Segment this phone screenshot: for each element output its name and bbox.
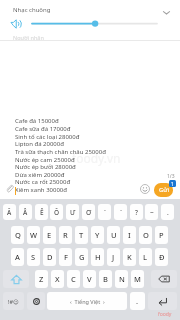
button[interactable]: I bbox=[123, 226, 136, 244]
staticText: . bbox=[167, 208, 169, 217]
button[interactable]: W bbox=[27, 226, 40, 244]
button[interactable]: P bbox=[155, 226, 168, 244]
button[interactable]: A bbox=[11, 248, 24, 266]
staticText: ? bbox=[135, 208, 138, 217]
button[interactable]: ` bbox=[114, 204, 127, 220]
button[interactable]: Ê bbox=[35, 204, 48, 220]
button[interactable]: S bbox=[27, 248, 40, 266]
staticText: 1/3 bbox=[167, 173, 175, 180]
staticText: U bbox=[111, 230, 117, 240]
button[interactable]: Emoji bbox=[138, 182, 152, 196]
staticText: Z bbox=[39, 274, 44, 284]
button[interactable]: ~ bbox=[145, 204, 158, 220]
button[interactable]: M bbox=[131, 270, 144, 288]
staticText: Nước ép bưởi 28000đ bbox=[15, 163, 76, 171]
staticText: S bbox=[31, 252, 36, 262]
button[interactable]: . bbox=[161, 204, 174, 220]
staticText: !#☺ bbox=[8, 298, 19, 305]
button[interactable]: V bbox=[83, 270, 96, 288]
staticText: foody.vn bbox=[72, 150, 121, 166]
button[interactable]: R bbox=[59, 226, 72, 244]
staticText: N bbox=[119, 274, 125, 284]
staticText: Gửi bbox=[159, 186, 169, 194]
button[interactable]: U bbox=[107, 226, 120, 244]
button[interactable]: E bbox=[43, 226, 56, 244]
staticText: Sinh tố các loại 28000đ bbox=[15, 133, 80, 141]
staticText: Ư bbox=[70, 208, 76, 217]
button[interactable]: Ă bbox=[3, 204, 16, 220]
button[interactable]: Q bbox=[11, 226, 24, 244]
button[interactable]: Y bbox=[91, 226, 104, 244]
staticText: J bbox=[112, 252, 115, 262]
staticText: Â bbox=[23, 208, 28, 217]
button[interactable]: T bbox=[75, 226, 88, 244]
button[interactable]: Symbols bbox=[3, 292, 24, 310]
button[interactable]: O bbox=[139, 226, 152, 244]
staticText: Dừa xiêm 20000đ bbox=[15, 171, 65, 179]
staticText: Người nhận bbox=[13, 34, 44, 41]
staticText: Ê bbox=[40, 208, 44, 217]
button[interactable]: Keyboard settings bbox=[27, 292, 45, 310]
staticText: P bbox=[159, 230, 164, 240]
button[interactable]: ? bbox=[130, 204, 143, 220]
button[interactable]: Shift bbox=[3, 270, 29, 288]
staticText: Ă bbox=[7, 208, 12, 217]
staticText: Lipton đá 20000đ bbox=[15, 140, 64, 148]
button[interactable]: G bbox=[75, 248, 88, 266]
staticText: M bbox=[134, 274, 141, 284]
button[interactable]: Gửi bbox=[154, 183, 173, 197]
staticText: Cafe đá 15000đ bbox=[15, 117, 59, 125]
button[interactable]: Attach file bbox=[3, 182, 15, 194]
button[interactable]: N bbox=[115, 270, 128, 288]
staticText: C bbox=[71, 274, 76, 284]
button[interactable]: ´ bbox=[98, 204, 111, 220]
button[interactable]: C bbox=[67, 270, 80, 288]
button[interactable]: Ơ bbox=[82, 204, 95, 220]
button[interactable]: D bbox=[43, 248, 56, 266]
button[interactable]: Ô bbox=[50, 204, 63, 220]
button[interactable]: Enter bbox=[148, 292, 177, 310]
staticText: . bbox=[136, 296, 139, 306]
staticText: Ô bbox=[54, 208, 60, 217]
staticText: L bbox=[143, 252, 148, 262]
staticText: I bbox=[128, 230, 131, 240]
staticText: O bbox=[143, 230, 149, 240]
staticText: Nhạc chuông bbox=[13, 6, 51, 14]
button[interactable]: Collapse panel bbox=[158, 4, 174, 20]
button[interactable]: Â bbox=[19, 204, 32, 220]
button[interactable]: J bbox=[107, 248, 120, 266]
staticText: F bbox=[64, 252, 68, 262]
staticText: R bbox=[63, 230, 68, 240]
button[interactable]: Z bbox=[35, 270, 48, 288]
staticText: W bbox=[30, 230, 38, 240]
button[interactable]: Đ bbox=[155, 248, 168, 266]
staticText: H bbox=[95, 252, 101, 262]
button[interactable]: . bbox=[130, 292, 145, 310]
staticText: X bbox=[55, 274, 60, 284]
button[interactable]: ‹ Tiếng Việt › bbox=[47, 292, 127, 310]
staticText: ‹ Tiếng Việt › bbox=[70, 298, 105, 305]
staticText: E bbox=[47, 230, 52, 240]
staticText: foody bbox=[158, 311, 172, 318]
staticText: ~ bbox=[150, 208, 154, 217]
staticText: Ơ bbox=[86, 208, 92, 217]
staticText: ` bbox=[120, 208, 122, 217]
button[interactable]: K bbox=[123, 248, 136, 266]
button[interactable]: H bbox=[91, 248, 104, 266]
staticText: Xiêm xanh 30000đ bbox=[15, 186, 67, 194]
button[interactable]: F bbox=[59, 248, 72, 266]
staticText: 1 bbox=[171, 181, 174, 187]
button[interactable]: X bbox=[51, 270, 64, 288]
staticText: T bbox=[79, 230, 84, 240]
button[interactable]: Ư bbox=[66, 204, 79, 220]
button[interactable]: L bbox=[139, 248, 152, 266]
staticText: Nước ca rốt 25000đ bbox=[15, 178, 71, 186]
staticText: ´ bbox=[104, 208, 106, 217]
button[interactable]: Backspace bbox=[151, 270, 177, 288]
staticText: Trà sữa thạch chân châu 25000đ bbox=[15, 148, 106, 156]
button[interactable]: B bbox=[99, 270, 112, 288]
staticText: K bbox=[127, 252, 132, 262]
staticText: Đ bbox=[159, 252, 165, 262]
staticText: Nước ép cam 25000đ bbox=[15, 156, 75, 164]
staticText: A bbox=[15, 252, 20, 262]
